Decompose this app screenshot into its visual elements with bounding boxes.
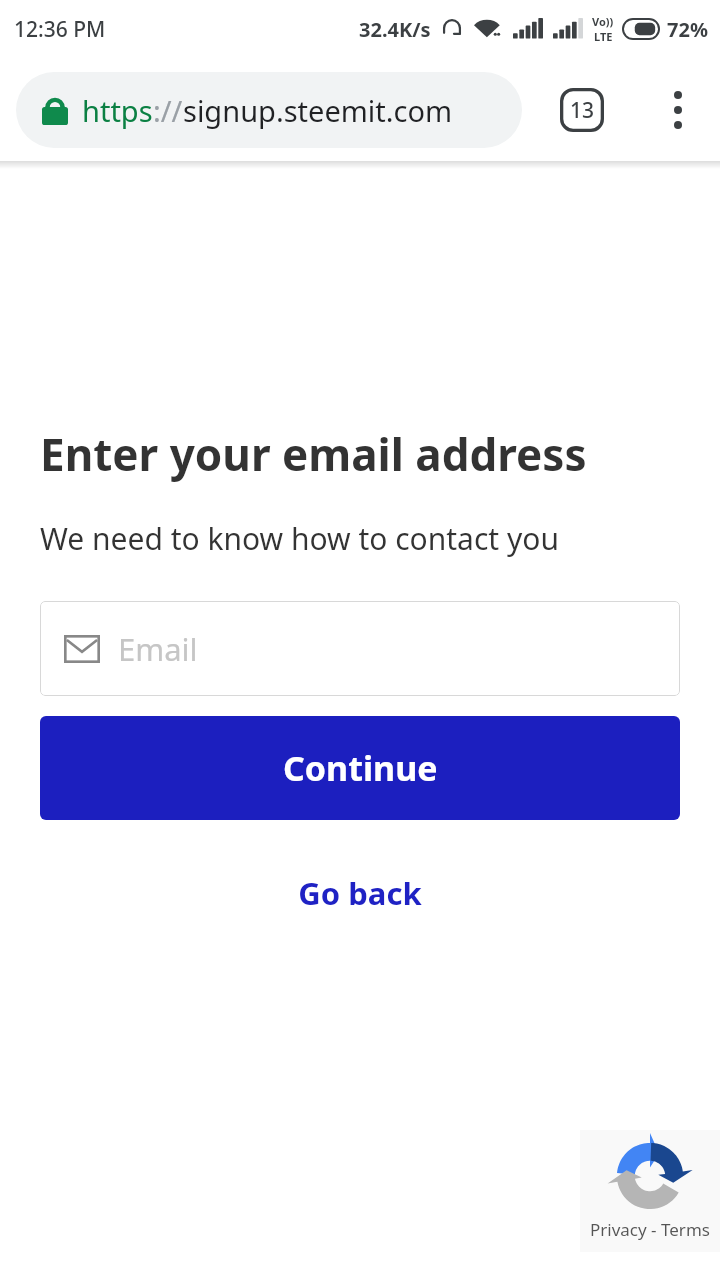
button[interactable]: Tabs, 13 open xyxy=(556,84,608,136)
staticText: Continue xyxy=(283,745,438,791)
staticText: 32.4K/s xyxy=(359,16,431,43)
button[interactable]: Email xyxy=(40,601,680,696)
staticText: Go back xyxy=(298,872,422,914)
staticText: Privacy - Terms xyxy=(590,1218,710,1241)
staticText: 12:36 PM xyxy=(14,15,106,44)
button[interactable]: reCAPTCHA Privacy and Terms xyxy=(580,1130,720,1252)
button[interactable]: https xyxy=(16,72,522,148)
button[interactable]: Continue xyxy=(40,716,680,820)
staticText: Email xyxy=(118,628,198,670)
staticText: 13 xyxy=(570,96,595,125)
staticText: https xyxy=(82,91,153,130)
staticText: :// xyxy=(153,91,183,130)
staticText: Vo)) xyxy=(592,14,614,29)
staticText: Enter your email address xyxy=(40,424,587,484)
staticText: We need to know how to contact you xyxy=(40,518,559,559)
button[interactable]: Go back xyxy=(274,864,446,922)
staticText: signup.steemit.com xyxy=(183,91,453,130)
staticText: 72% xyxy=(667,16,708,43)
button[interactable]: More options xyxy=(650,82,706,138)
staticText: LTE xyxy=(594,29,613,44)
